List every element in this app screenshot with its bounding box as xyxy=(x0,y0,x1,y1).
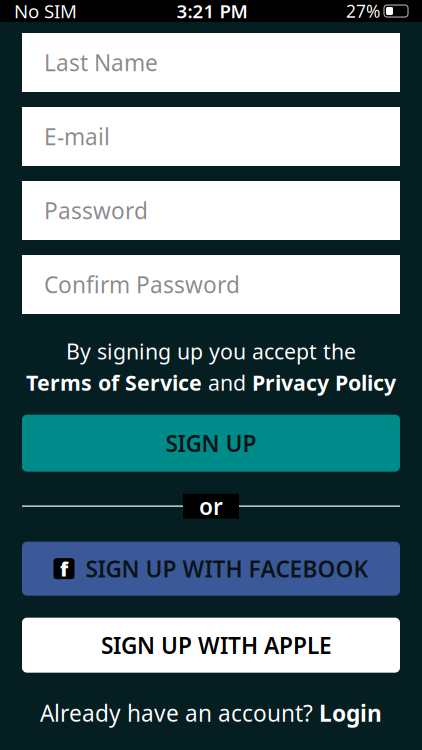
staticText: SIGN UP WITH APPLE xyxy=(101,630,332,660)
button[interactable]: Already have an account? xyxy=(40,698,382,728)
staticText: f xyxy=(60,555,68,582)
button[interactable] xyxy=(22,618,400,673)
button[interactable]: Confirm Password xyxy=(22,255,400,314)
button[interactable]: Last Name xyxy=(22,33,400,92)
button[interactable]: SIGN UP xyxy=(22,415,400,472)
staticText: Already have an account? xyxy=(40,698,319,728)
staticText: E-mail xyxy=(44,121,110,151)
button[interactable]: Terms of Service xyxy=(26,368,202,397)
staticText: Confirm Password xyxy=(44,269,240,299)
staticText: Terms of Service xyxy=(26,368,202,397)
button[interactable]: E-mail xyxy=(22,107,400,166)
staticText: Privacy Policy xyxy=(252,368,396,397)
staticText: or xyxy=(199,491,223,521)
staticText: SIGN UP xyxy=(165,428,256,458)
button[interactable]: Password xyxy=(22,181,400,240)
staticText: Login xyxy=(319,698,382,728)
staticText: and xyxy=(202,368,252,397)
staticText: SIGN UP WITH FACEBOOK xyxy=(85,554,368,584)
staticText: By signing up you accept the xyxy=(66,337,356,365)
button[interactable]: f xyxy=(22,542,400,596)
staticText: 27% xyxy=(346,0,380,22)
staticText: Password xyxy=(44,195,148,225)
button[interactable]: Privacy Policy xyxy=(252,368,396,397)
staticText: Last Name xyxy=(44,47,158,77)
staticText: No SIM xyxy=(14,0,77,23)
staticText: 3:21 PM xyxy=(176,0,247,23)
